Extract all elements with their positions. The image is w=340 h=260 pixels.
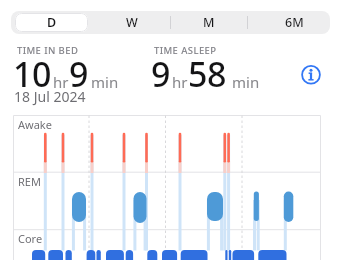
staticText: hr	[53, 72, 69, 92]
staticText: D	[47, 14, 57, 31]
staticText: 9	[69, 51, 88, 97]
staticText: 6M	[285, 14, 304, 31]
button[interactable]	[300, 64, 322, 86]
staticText: Awake	[18, 117, 52, 132]
staticText: 58	[188, 51, 226, 97]
staticText: TIME ASLEEP	[154, 44, 217, 57]
button[interactable]: D	[22, 12, 82, 33]
staticText: 10	[13, 51, 51, 97]
staticText: 18 Jul 2024	[14, 87, 86, 106]
staticText: W	[126, 14, 138, 31]
staticText: hr	[172, 72, 188, 92]
button[interactable]: M	[179, 12, 239, 33]
staticText: 9	[151, 51, 170, 97]
button[interactable]: 6M	[264, 12, 324, 33]
button[interactable]: W	[102, 12, 162, 33]
staticText: REM	[18, 174, 41, 189]
staticText: Core	[18, 231, 43, 246]
staticText: M	[203, 14, 215, 31]
staticText: min	[91, 72, 119, 92]
staticText: min	[232, 72, 260, 92]
staticText: TIME IN BED	[17, 44, 79, 57]
